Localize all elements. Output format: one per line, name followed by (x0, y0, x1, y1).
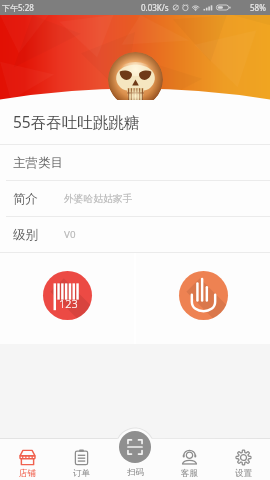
staticText: 客服 (181, 468, 198, 479)
button[interactable]: 55吞吞吐吐跳跳糖 (0, 100, 270, 144)
button[interactable]: 客服 (162, 438, 216, 480)
button[interactable]: 设置 (216, 438, 270, 480)
staticText: 扫码 (127, 467, 144, 478)
button[interactable]: 店铺 (0, 438, 54, 480)
button[interactable]: 级别 (0, 217, 270, 252)
staticText: 简介 (13, 191, 38, 207)
staticText: 外婆哈姑姑家手 (64, 193, 133, 205)
staticText: 0.03K/s (141, 2, 169, 13)
staticText: 下午5:28 (2, 2, 34, 13)
staticText: 店铺 (19, 468, 36, 479)
staticText: V0 (64, 228, 76, 241)
button[interactable]: 扫码枪录入 (0, 253, 134, 344)
staticText: 级别 (13, 227, 38, 243)
staticText: 主营类目 (13, 155, 63, 171)
button[interactable]: 手动录入 (136, 253, 270, 344)
staticText: 订单 (73, 468, 90, 479)
button[interactable]: 简介 (0, 181, 270, 216)
staticText: 55吞吞吐吐跳跳糖 (13, 111, 140, 132)
button[interactable]: 扫码 (108, 428, 162, 480)
staticText: 设置 (235, 468, 252, 479)
staticText: 123 (59, 296, 78, 311)
staticText: 58% (250, 2, 266, 13)
button[interactable]: 订单 (54, 438, 108, 480)
button[interactable]: 主营类目 (0, 145, 270, 180)
